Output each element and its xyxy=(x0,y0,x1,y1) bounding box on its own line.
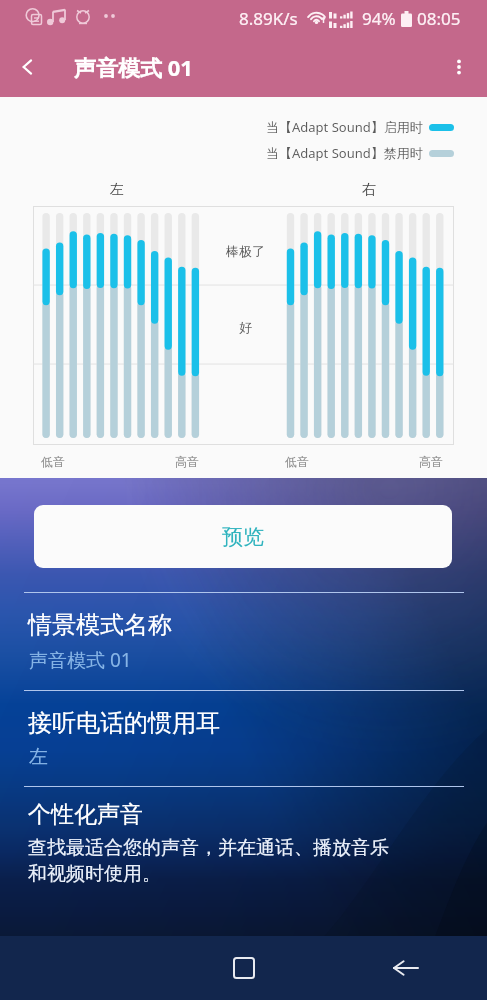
staticText: 低音 xyxy=(285,454,309,469)
staticText: 当【Adapt Sound】启用时 xyxy=(266,118,423,136)
staticText: 右 xyxy=(362,181,376,199)
staticText: 左 xyxy=(29,745,48,769)
staticText: 查找最适合您的声音，并在通话、播放音乐 和视频时使用。 xyxy=(28,836,389,885)
staticText: 高音 xyxy=(419,454,443,469)
staticText: 高音 xyxy=(175,454,199,469)
staticText: 声音模式 01 xyxy=(74,52,193,82)
button[interactable]: 情景模式名称 xyxy=(0,592,487,690)
button[interactable]: 个性化声音 xyxy=(0,786,487,885)
staticText: 情景模式名称 xyxy=(28,610,172,640)
button[interactable]: Recent apps xyxy=(163,936,325,1000)
staticText: 当【Adapt Sound】禁用时 xyxy=(266,144,423,162)
staticText: 左 xyxy=(110,181,124,199)
staticText: 接听电话的惯用耳 xyxy=(28,708,220,738)
button[interactable]: More options xyxy=(431,36,487,97)
staticText: 声音模式 01 xyxy=(29,647,132,673)
button[interactable]: Back xyxy=(325,936,487,1000)
staticText: 好 xyxy=(239,319,252,335)
staticText: 8.89K/s xyxy=(239,7,298,30)
staticText: 低音 xyxy=(41,454,65,469)
button[interactable]: 接听电话的惯用耳 xyxy=(0,690,487,786)
staticText: 08:05 xyxy=(417,7,461,30)
button[interactable]: 预览 xyxy=(34,505,452,568)
staticText: 棒极了 xyxy=(226,243,265,259)
staticText: 94% xyxy=(362,7,396,30)
staticText: 个性化声音 xyxy=(28,800,143,829)
button[interactable]: Back xyxy=(0,36,56,97)
staticText: 预览 xyxy=(222,524,264,550)
